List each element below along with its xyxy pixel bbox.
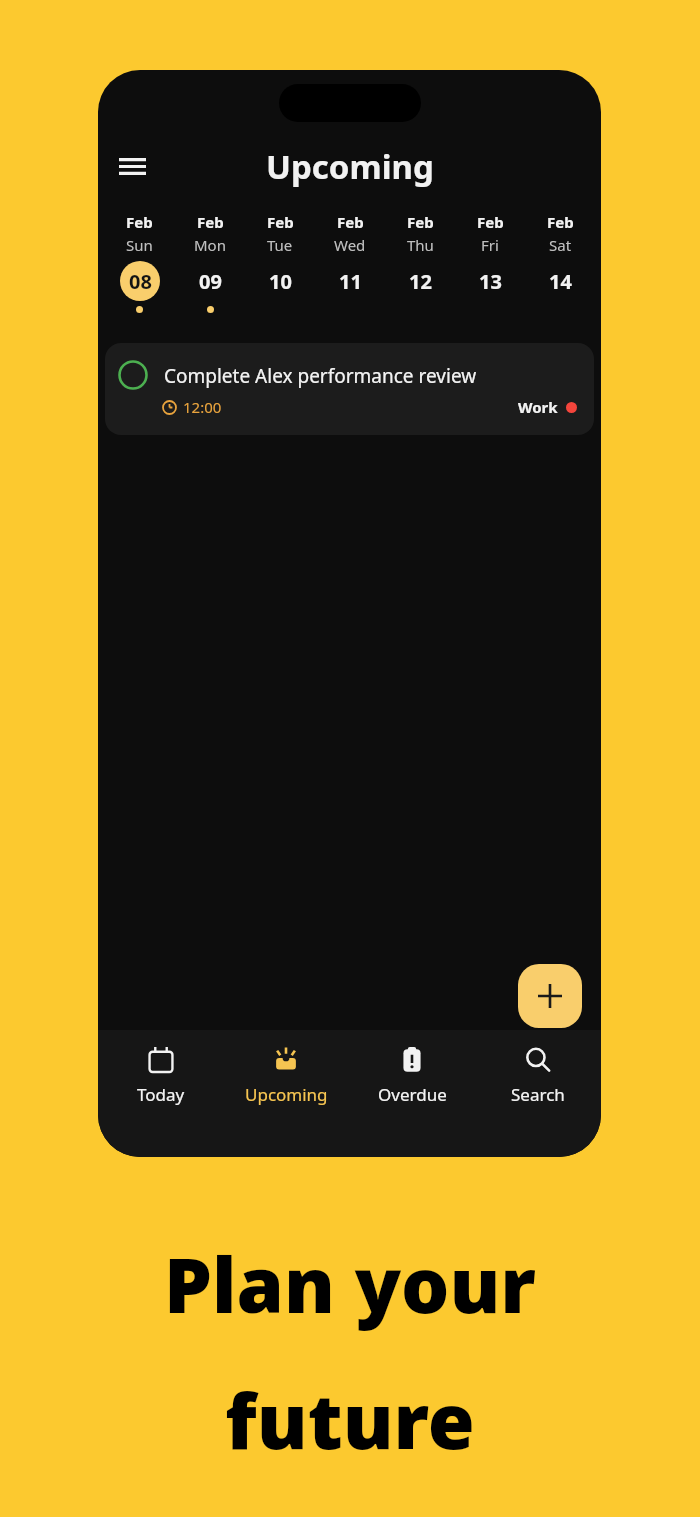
staticText: Sun	[126, 235, 153, 255]
button[interactable]: Feb	[315, 212, 385, 313]
staticText: Sat	[549, 235, 572, 255]
button[interactable]: Feb	[245, 212, 315, 313]
button[interactable]: Overdue	[349, 1030, 475, 1106]
button[interactable]: Feb	[385, 212, 455, 313]
button[interactable]: Mark complete	[115, 357, 151, 393]
staticText: Search	[511, 1083, 565, 1106]
staticText: Feb	[126, 212, 153, 232]
staticText: 09	[199, 268, 222, 295]
staticText: Tue	[267, 235, 293, 255]
button[interactable]: Feb	[455, 212, 525, 313]
button[interactable]: Search	[475, 1030, 601, 1106]
staticText: 11	[339, 268, 362, 295]
staticText: Feb	[197, 212, 224, 232]
staticText: 13	[479, 268, 502, 295]
button[interactable]: Mark complete	[105, 343, 594, 435]
staticText: future	[225, 1368, 475, 1472]
staticText: 12:00	[183, 397, 222, 417]
staticText: Mon	[194, 235, 226, 255]
staticText: Plan your	[164, 1232, 536, 1336]
staticText: Feb	[477, 212, 504, 232]
staticText: Upcoming	[266, 144, 434, 189]
staticText: Wed	[334, 235, 366, 255]
staticText: Upcoming	[245, 1083, 328, 1106]
staticText: Today	[137, 1083, 185, 1106]
staticText: Complete Alex performance review	[164, 363, 477, 389]
button[interactable]: Add task	[518, 964, 582, 1028]
staticText: 08	[129, 268, 152, 295]
button[interactable]: Today	[98, 1030, 223, 1106]
button[interactable]: Menu	[108, 142, 156, 190]
staticText: 12	[409, 268, 432, 295]
staticText: Overdue	[378, 1083, 447, 1106]
button[interactable]: Upcoming	[223, 1030, 349, 1106]
staticText: Feb	[407, 212, 434, 232]
button[interactable]: Feb	[104, 212, 175, 313]
staticText: Feb	[267, 212, 294, 232]
staticText: Feb	[547, 212, 574, 232]
button[interactable]: Feb	[525, 212, 595, 313]
staticText: 10	[269, 268, 292, 295]
staticText: Work	[518, 397, 558, 417]
staticText: 14	[549, 268, 572, 295]
staticText: Fri	[481, 235, 499, 255]
button[interactable]: Feb	[175, 212, 245, 313]
staticText: Feb	[337, 212, 364, 232]
staticText: Thu	[407, 235, 434, 255]
